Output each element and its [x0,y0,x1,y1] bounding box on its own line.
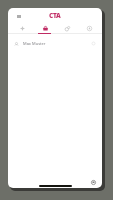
button[interactable]: Info [78,24,100,33]
staticText: CTA [49,11,61,20]
button[interactable]: Max Muster [8,35,102,51]
button[interactable]: Wallet [34,24,56,33]
button[interactable]: Options [89,39,98,48]
button[interactable]: Menu [13,11,24,22]
button[interactable]: Favourites [11,24,34,33]
staticText: Max Muster [23,41,46,46]
button[interactable]: Chat [88,177,98,187]
button[interactable]: Links [56,24,78,33]
